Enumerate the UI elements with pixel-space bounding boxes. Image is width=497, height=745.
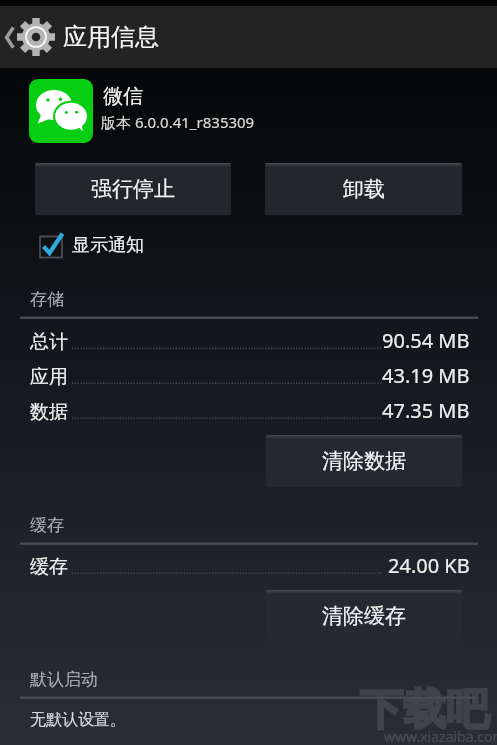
button[interactable]: Back xyxy=(0,6,58,68)
button[interactable]: 卸载 xyxy=(265,163,462,215)
button[interactable]: 数据 xyxy=(0,400,497,432)
button[interactable]: 强行停止 xyxy=(35,163,231,215)
button[interactable]: 缓存 xyxy=(0,555,497,587)
staticText: 清除缓存 xyxy=(322,603,406,629)
button[interactable]: 总计 xyxy=(0,330,497,362)
staticText: 卸载 xyxy=(343,176,385,202)
staticText: 总计 xyxy=(30,330,68,354)
button[interactable]: 显示通知 xyxy=(34,229,144,261)
button[interactable]: 清除缓存 xyxy=(266,590,462,642)
staticText: 缓存 xyxy=(30,515,64,536)
button[interactable]: 应用 xyxy=(0,365,497,397)
staticText: 应用 xyxy=(30,365,68,389)
staticText: 应用信息 xyxy=(63,22,159,52)
staticText: 43.19 MB xyxy=(382,362,470,389)
staticText: 90.54 MB xyxy=(382,327,470,354)
staticText: 显示通知 xyxy=(72,234,144,257)
staticText: 数据 xyxy=(30,400,68,424)
staticText: 版本 6.0.0.41_r835309 xyxy=(101,112,255,132)
staticText: 24.00 KB xyxy=(388,552,470,579)
staticText: 下载吧 xyxy=(360,683,489,737)
staticText: www.xiazaiba.com xyxy=(384,727,497,745)
staticText: 缓存 xyxy=(30,555,68,579)
staticText: 默认启动 xyxy=(30,669,98,690)
staticText: 47.35 MB xyxy=(382,397,470,424)
staticText: 无默认设置。 xyxy=(30,710,126,730)
staticText: 强行停止 xyxy=(91,176,175,202)
button[interactable]: 清除数据 xyxy=(266,435,462,487)
staticText: 微信 xyxy=(103,84,143,109)
staticText: 清除数据 xyxy=(322,448,406,474)
staticText: 存储 xyxy=(30,289,64,310)
